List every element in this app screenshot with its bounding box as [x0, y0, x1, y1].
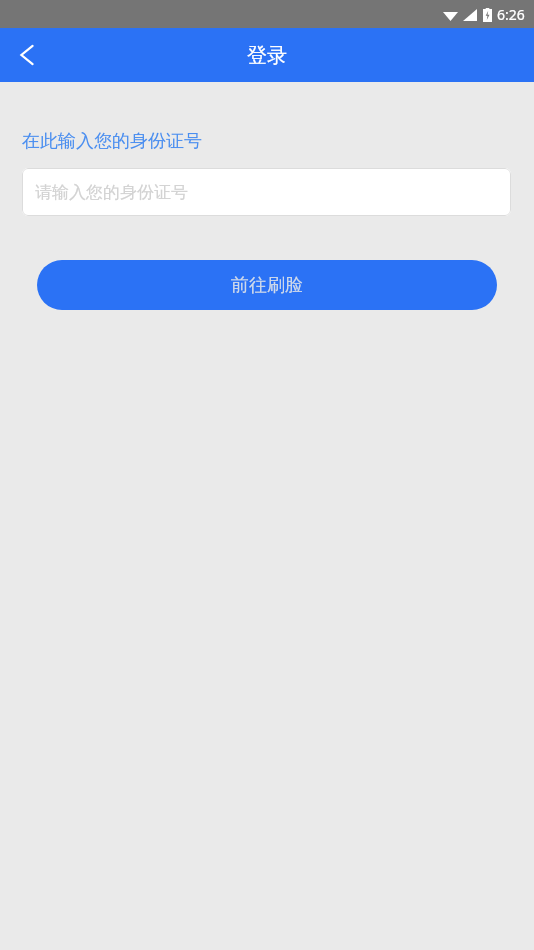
button[interactable]: 前往刷脸	[37, 260, 497, 310]
staticText: 请输入您的身份证号	[35, 182, 188, 203]
staticText: 6:26	[497, 5, 525, 24]
staticText: 前往刷脸	[231, 274, 303, 297]
staticText: 在此输入您的身份证号	[22, 130, 202, 153]
button[interactable]: Back	[0, 28, 54, 82]
staticText: 登录	[247, 43, 287, 68]
button[interactable]: 请输入您的身份证号	[22, 168, 511, 216]
